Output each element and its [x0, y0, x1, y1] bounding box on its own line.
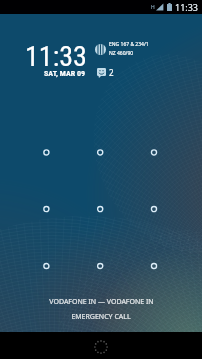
staticText: H — [151, 4, 155, 11]
staticText: EMERGENCY CALL — [71, 312, 131, 322]
staticText: ENG 167 & 234/1 — [109, 41, 149, 48]
button[interactable]: 2 — [97, 67, 114, 78]
staticText: NZ 460/90 — [109, 50, 134, 57]
staticText: 11:33 — [175, 1, 199, 13]
staticText: 11:33 — [25, 40, 87, 73]
button[interactable]: ENG 167 & 234/1 — [95, 41, 149, 57]
staticText: SAT, MAR 09 — [44, 69, 86, 78]
staticText: VODAFONE IN — VODAFONE IN — [49, 297, 154, 307]
button[interactable]: EMERGENCY CALL — [57, 310, 145, 324]
staticText: 2 — [109, 67, 114, 78]
other: Unlock — [93, 339, 109, 355]
